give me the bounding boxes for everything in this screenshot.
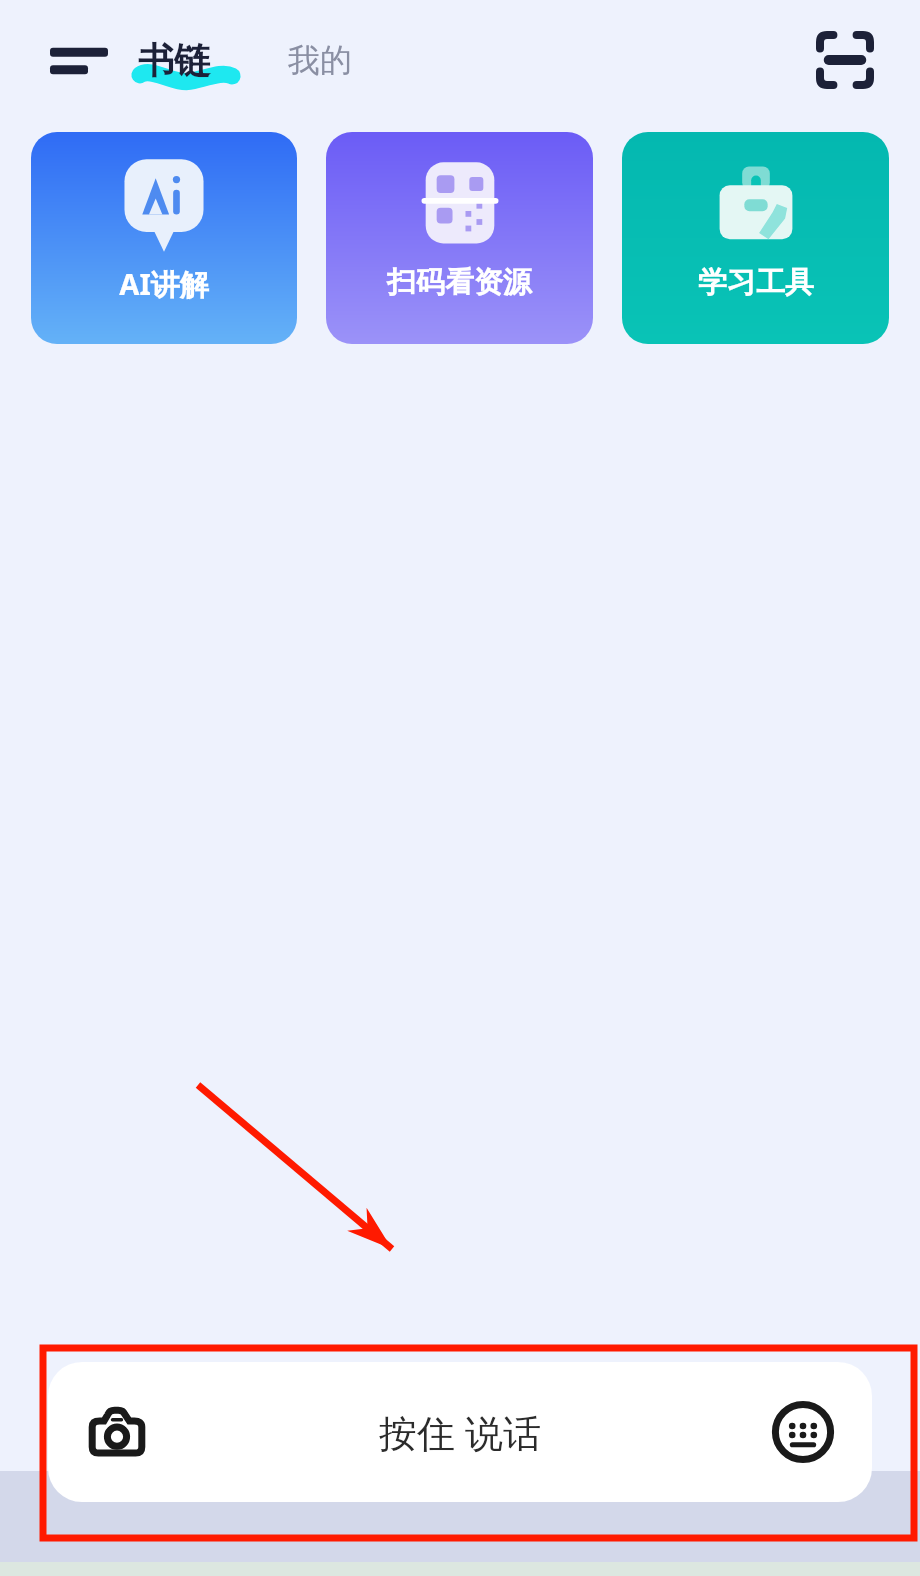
staticText: AI讲解 xyxy=(119,264,209,304)
button[interactable]: Camera xyxy=(48,1362,872,1502)
button[interactable]: 我的 xyxy=(288,40,352,80)
staticText: 扫码看资源 xyxy=(387,264,532,301)
staticText: 学习工具 xyxy=(698,264,814,301)
button[interactable]: Menu xyxy=(40,25,120,95)
button[interactable]: Scan xyxy=(806,21,884,99)
button[interactable]: AI讲解 xyxy=(31,132,297,344)
staticText: 我的 xyxy=(288,40,352,80)
button[interactable]: Camera xyxy=(74,1389,160,1475)
button[interactable]: 书链 xyxy=(138,38,233,83)
button[interactable]: Keyboard xyxy=(760,1389,846,1475)
button[interactable]: 学习工具 xyxy=(622,132,889,344)
staticText: 书链 xyxy=(138,38,210,83)
staticText: 按住 说话 xyxy=(379,1406,541,1458)
button[interactable]: 扫码看资源 xyxy=(326,132,593,344)
